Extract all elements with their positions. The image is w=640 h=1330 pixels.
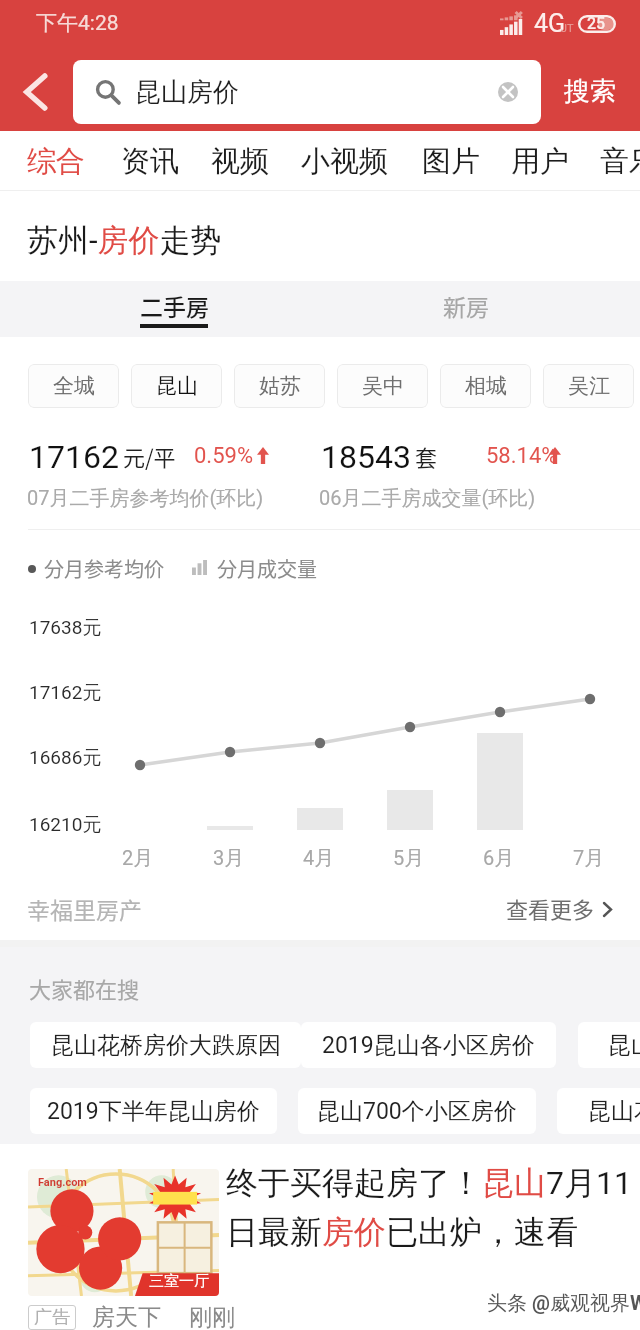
staticText: 17638元 — [29, 616, 102, 640]
button[interactable]: 小视频 — [301, 131, 388, 191]
staticText: 苏州-房价走势 — [27, 221, 222, 260]
staticText: 分月参考均价 — [44, 554, 164, 583]
staticText: 5月 — [393, 846, 425, 871]
button[interactable]: 全城 — [28, 364, 119, 408]
button[interactable]: 昆山700个小区房价 — [298, 1088, 536, 1134]
button[interactable]: 2019昆山各小区房价 — [301, 1022, 556, 1068]
staticText: 三室一厅 — [149, 1272, 209, 1291]
staticText: 58.14% — [486, 443, 558, 469]
staticText: 昆山花桥房价大跌原因 — [51, 1031, 281, 1060]
button[interactable]: 用户 — [511, 131, 569, 191]
staticText: 小视频 — [301, 143, 388, 180]
button[interactable]: 昆山 — [131, 364, 222, 408]
staticText: 大家都在搜 — [29, 972, 140, 1004]
button[interactable]: 姑苏 — [234, 364, 325, 408]
staticText: 2月 — [122, 846, 154, 871]
button[interactable]: 昆山花桥房价大跌原因 — [30, 1022, 301, 1068]
staticText: 搜索 — [564, 75, 616, 108]
staticText: 4月 — [303, 846, 335, 871]
staticText: 吴江 — [568, 373, 610, 399]
staticText: 套 — [415, 440, 438, 472]
button[interactable]: 吴中 — [337, 364, 428, 408]
staticText: 0.59% — [194, 443, 254, 469]
staticText: 17162元 — [29, 681, 102, 705]
staticText: 姑苏 — [259, 373, 301, 399]
button[interactable]: 音乐 — [600, 131, 640, 191]
button[interactable]: 相城 — [440, 364, 531, 408]
staticText: JT — [561, 22, 574, 35]
button[interactable]: 二手房 — [118, 281, 230, 337]
staticText: 广告 — [34, 1306, 70, 1329]
button[interactable]: 视频 — [211, 131, 269, 191]
staticText: 查看更多 — [506, 892, 595, 924]
button[interactable]: Back — [0, 52, 72, 131]
button[interactable]: 昆山二手房 — [578, 1022, 640, 1068]
staticText: 吴中 — [362, 373, 404, 399]
staticText: 昆山二手房 — [608, 1031, 640, 1060]
staticText: 昆山700个小区房价 — [317, 1097, 517, 1126]
staticText: 7月 — [573, 846, 605, 871]
button[interactable]: Advertisement thumbnail — [28, 1169, 219, 1296]
staticText: 4G — [534, 9, 566, 38]
staticText: 图片 — [422, 143, 480, 180]
staticText: 音乐 — [600, 143, 640, 180]
staticText: 25 — [587, 14, 606, 32]
staticText: 17162 — [29, 438, 119, 476]
button[interactable]: 搜索 — [540, 52, 640, 131]
staticText: 2019昆山各小区房价 — [322, 1031, 535, 1060]
button[interactable]: 终于买得起房了！昆山7月11日最新房价已出炉，速看 — [226, 1163, 638, 1253]
staticText: Fang.com — [38, 1176, 87, 1189]
button[interactable]: 吴江 — [543, 364, 634, 408]
staticText: 下午4:28 — [36, 10, 119, 36]
staticText: 全城 — [53, 373, 95, 399]
staticText: 16210元 — [29, 813, 102, 837]
button[interactable]: 图片 — [422, 131, 480, 191]
staticText: 16686元 — [29, 746, 102, 770]
button[interactable]: 新房 — [409, 281, 521, 337]
button[interactable]: 资讯 — [121, 131, 179, 191]
staticText: 房天下 — [92, 1303, 161, 1330]
staticText: 分月成交量 — [217, 554, 317, 583]
button[interactable]: 2019下半年昆山房价 — [30, 1088, 277, 1134]
staticText: 资讯 — [121, 143, 179, 180]
staticText: 07月二手房参考均价(环比) — [27, 486, 264, 511]
staticText: 昆山 — [156, 373, 198, 399]
staticText: 相城 — [465, 373, 507, 399]
staticText: 元/平 — [123, 440, 176, 472]
button[interactable]: 综合 — [27, 131, 85, 191]
staticText: 2019下半年昆山房价 — [47, 1097, 260, 1126]
button[interactable]: 查看更多 — [496, 886, 624, 934]
staticText: 头条 @威观视界W — [487, 1291, 640, 1316]
staticText: 3月 — [213, 846, 245, 871]
staticText: 06月二手房成交量(环比) — [319, 486, 536, 511]
staticText: 二手房 — [140, 289, 209, 322]
button[interactable]: Clear search text — [491, 75, 525, 109]
staticText: 综合 — [27, 143, 85, 180]
staticText: 幸福里房产 — [27, 892, 142, 925]
staticText: 昆山房价 — [135, 76, 239, 109]
button[interactable]: 昆山花桥房价 — [557, 1088, 640, 1134]
button[interactable]: 昆山房价 — [73, 60, 541, 124]
staticText: 6月 — [483, 846, 515, 871]
staticText: 新房 — [443, 289, 489, 322]
staticText: 18543 — [321, 438, 411, 476]
staticText: 视频 — [211, 143, 269, 180]
staticText: 用户 — [511, 143, 569, 180]
staticText: 昆山花桥房价 — [588, 1097, 640, 1126]
staticText: 刚刚 — [189, 1303, 235, 1330]
